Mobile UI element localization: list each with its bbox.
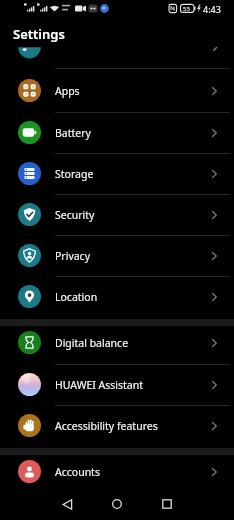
button[interactable] xyxy=(0,42,234,68)
button[interactable] xyxy=(52,489,82,519)
staticText: Accessibility features xyxy=(55,419,158,433)
button[interactable]: Security xyxy=(0,194,234,235)
button[interactable]: Digital balance xyxy=(0,322,234,363)
staticText: HUAWEI Assistant xyxy=(55,378,144,392)
staticText: 55 xyxy=(183,5,190,13)
staticText: 4:43 xyxy=(203,3,221,15)
staticText: Digital balance xyxy=(55,336,129,350)
staticText: Accounts xyxy=(55,465,100,479)
button[interactable]: HUAWEI Assistant xyxy=(0,364,234,405)
button[interactable]: Privacy xyxy=(0,235,234,276)
button[interactable]: Accounts xyxy=(0,451,234,492)
button[interactable]: Accessibility features xyxy=(0,405,234,446)
staticText: Settings xyxy=(13,25,65,43)
button[interactable] xyxy=(102,489,132,519)
button[interactable]: Apps xyxy=(0,70,234,111)
staticText: Storage xyxy=(55,167,94,181)
button[interactable]: Battery xyxy=(0,112,234,153)
button[interactable] xyxy=(152,489,182,519)
staticText: Security xyxy=(55,208,95,222)
staticText: Apps xyxy=(55,84,80,98)
button[interactable]: Storage xyxy=(0,153,234,194)
staticText: Location xyxy=(55,290,98,304)
staticText: Privacy xyxy=(55,249,91,263)
button[interactable]: Location xyxy=(0,276,234,317)
staticText: Battery xyxy=(55,126,91,140)
